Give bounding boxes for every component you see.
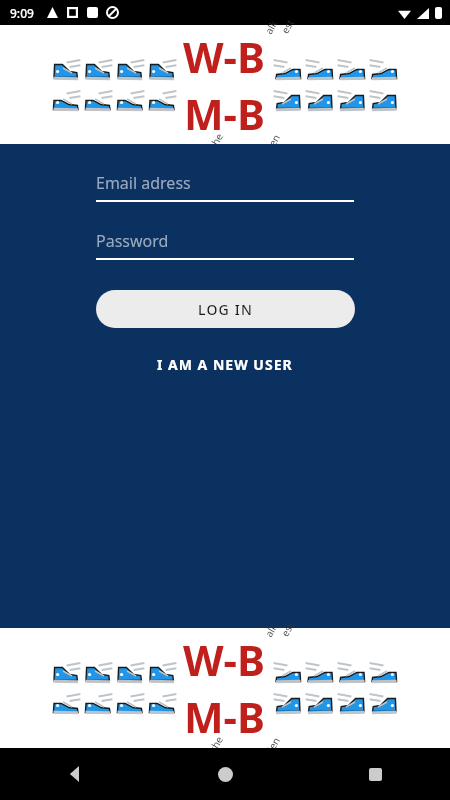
staticText: Password [96, 230, 169, 252]
staticText: alk [261, 620, 280, 639]
button[interactable]: Recent apps [300, 748, 450, 800]
staticText: alk [261, 17, 280, 36]
staticText: arche [201, 733, 226, 763]
staticText: est [278, 619, 297, 639]
button[interactable]: LOG IN [96, 290, 355, 328]
staticText: arche [201, 130, 226, 160]
staticText: M-B [184, 85, 265, 142]
staticText: I AM A NEW USER [157, 355, 293, 374]
staticText: Email adress [96, 172, 191, 194]
button[interactable]: Home [150, 748, 300, 800]
staticText: W-B [183, 631, 265, 688]
button[interactable]: Email adress [96, 166, 354, 202]
button[interactable]: I AM A NEW USER [143, 349, 307, 380]
staticText: W-B [183, 28, 265, 85]
staticText: est [278, 16, 297, 36]
button[interactable]: Back [0, 748, 150, 800]
staticText: ien [264, 734, 283, 754]
staticText: ien [264, 131, 283, 151]
button[interactable]: Password [96, 224, 354, 260]
staticText: LOG IN [198, 300, 254, 319]
staticText: M-B [184, 688, 265, 745]
staticText: 9:09 [10, 5, 34, 21]
